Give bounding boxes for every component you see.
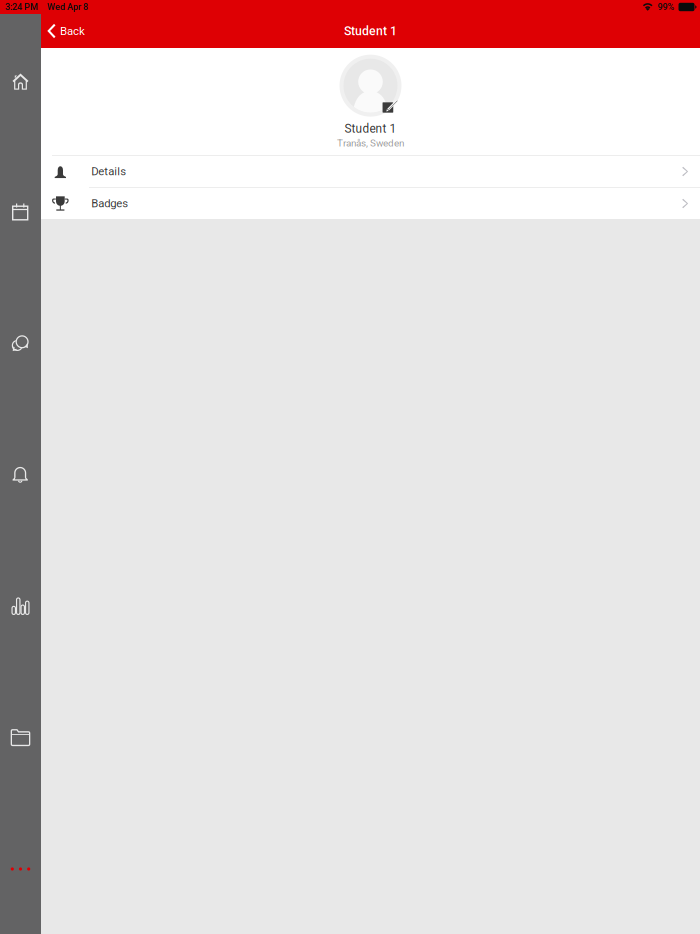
staticText: Student 1	[344, 24, 397, 38]
button[interactable]: Reports	[0, 581, 41, 631]
staticText: Student 1	[344, 122, 396, 136]
staticText: Tranås, Sweden	[337, 137, 404, 149]
button[interactable]: Details	[41, 156, 700, 187]
staticText: Badges	[91, 197, 128, 210]
button[interactable]: Calendar	[0, 187, 41, 237]
button[interactable]: Home	[0, 56, 41, 106]
staticText: Wed Apr 8	[47, 2, 88, 12]
button[interactable]: Notifications	[0, 450, 41, 500]
button[interactable]: Edit photo	[385, 99, 399, 113]
button[interactable]: Badges	[41, 188, 700, 219]
button[interactable]: Messages	[0, 318, 41, 368]
staticText: 3:24 PM	[5, 2, 38, 12]
staticText: Details	[91, 165, 126, 178]
staticText: Back	[60, 24, 85, 38]
button[interactable]: More	[0, 844, 41, 894]
button[interactable]: Files	[0, 713, 41, 763]
staticText: 99%	[657, 2, 674, 12]
button[interactable]: Back	[41, 16, 93, 46]
